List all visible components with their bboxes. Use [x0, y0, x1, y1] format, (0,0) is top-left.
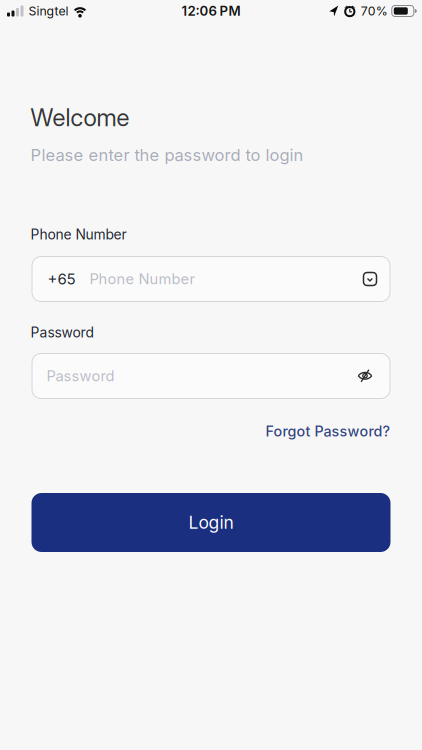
staticText: Welcome	[30, 103, 129, 132]
button[interactable]: Show password	[357, 369, 390, 383]
staticText: Login	[188, 512, 233, 533]
button[interactable]: Phone Number	[0, 256, 422, 302]
staticText: 12:06 PM	[181, 3, 240, 19]
button[interactable]: Forgot Password?	[265, 422, 390, 440]
staticText: +65	[47, 270, 75, 288]
staticText: Password	[30, 324, 93, 341]
button[interactable]: Choose country code	[363, 272, 390, 285]
button[interactable]: Password	[0, 353, 422, 399]
staticText: Phone Number	[30, 226, 126, 243]
staticText: Phone Number	[89, 270, 195, 288]
staticText: Singtel	[28, 4, 68, 18]
staticText: Please enter the password to login	[30, 145, 303, 165]
staticText: 70%	[361, 4, 388, 18]
staticText: Password	[46, 367, 114, 385]
staticText: Forgot Password?	[265, 422, 390, 440]
button[interactable]: Login	[0, 493, 422, 552]
